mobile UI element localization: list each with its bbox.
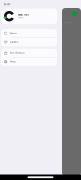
- button[interactable]: Battery Optimization: [1, 49, 57, 57]
- staticText: Settings: [10, 61, 16, 63]
- staticText: Battery Optimization: [10, 52, 25, 54]
- staticText: Optimized: [18, 17, 24, 19]
- staticText: 9:41: [4, 3, 10, 6]
- staticText: Boost 101%: [18, 14, 29, 16]
- button[interactable]: Settings: [1, 57, 57, 66]
- button[interactable]: Boost 101%: [1, 8, 57, 24]
- button[interactable]: Updates: [1, 29, 57, 37]
- staticText: Protection on: [64, 22, 73, 24]
- staticText: How it Works: [10, 41, 19, 43]
- staticText: Updates: [10, 32, 17, 34]
- button[interactable]: How it Works: [1, 38, 57, 46]
